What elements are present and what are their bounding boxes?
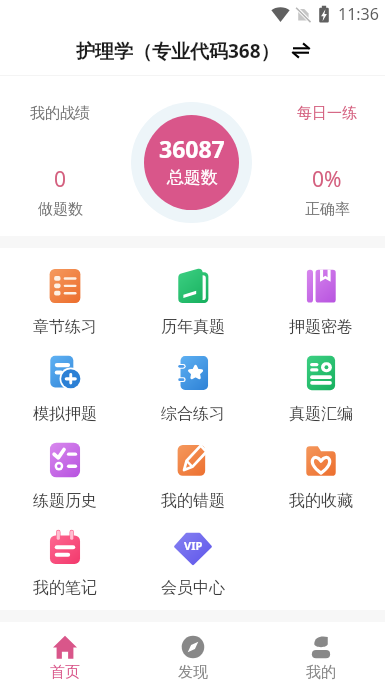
button[interactable]: 首页: [0, 622, 129, 682]
button[interactable]: 36087: [131, 102, 252, 223]
staticText: 押题密卷: [289, 317, 353, 337]
staticText: 总题数: [167, 167, 218, 188]
staticText: 我的笔记: [33, 578, 97, 598]
staticText: 0: [54, 165, 67, 194]
button[interactable]: 发现: [129, 622, 257, 682]
staticText: 36087: [159, 133, 225, 164]
button[interactable]: 我的笔记: [0, 529, 129, 598]
staticText: 历年真题: [161, 317, 225, 337]
staticText: 正确率: [305, 200, 350, 219]
staticText: 发现: [178, 663, 208, 682]
staticText: 首页: [50, 663, 80, 682]
staticText: 我的: [306, 663, 336, 682]
staticText: 我的收藏: [289, 491, 353, 511]
staticText: 会员中心: [161, 578, 225, 598]
staticText: 每日一练: [297, 104, 357, 123]
button[interactable]: 章节练习: [0, 268, 129, 337]
button[interactable]: 练题历史: [0, 442, 129, 511]
button[interactable]: 我的: [257, 622, 385, 682]
staticText: VIP: [184, 538, 203, 553]
staticText: 护理学（专业代码368）: [76, 38, 280, 64]
button[interactable]: 历年真题: [129, 268, 257, 337]
staticText: 模拟押题: [33, 404, 97, 424]
button[interactable]: 模拟押题: [0, 355, 129, 424]
staticText: 我的战绩: [30, 104, 90, 123]
staticText: 练题历史: [33, 491, 97, 511]
staticText: 0%: [312, 165, 342, 194]
button[interactable]: 我的错题: [129, 442, 257, 511]
staticText: 章节练习: [33, 317, 97, 337]
staticText: 做题数: [38, 200, 83, 219]
staticText: 11:36: [338, 3, 379, 25]
staticText: 综合练习: [161, 404, 225, 424]
staticText: 我的错题: [161, 491, 225, 511]
staticText: 真题汇编: [289, 404, 353, 424]
button[interactable]: VIP: [129, 529, 257, 598]
button[interactable]: 综合练习: [129, 355, 257, 424]
button[interactable]: 押题密卷: [257, 268, 385, 337]
button[interactable]: 我的收藏: [257, 442, 385, 511]
button[interactable]: 真题汇编: [257, 355, 385, 424]
button[interactable]: Switch subject: [289, 38, 313, 62]
